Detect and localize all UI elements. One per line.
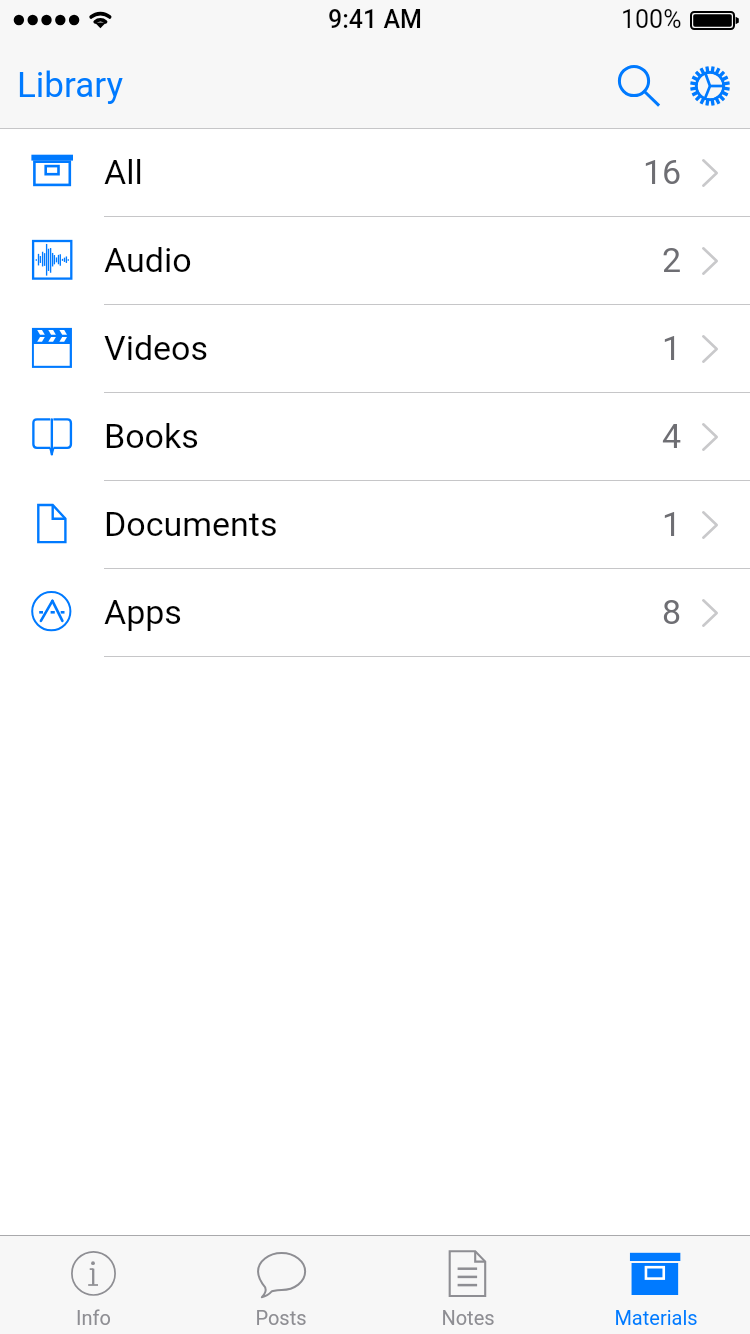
button[interactable]: Posts (187, 1235, 374, 1334)
button[interactable]: Info (0, 1235, 187, 1334)
button[interactable]: Materials (562, 1235, 750, 1334)
button[interactable]: Settings (682, 58, 738, 114)
staticText: Notes (441, 1306, 495, 1329)
button[interactable]: All (0, 129, 750, 217)
button[interactable]: Apps (0, 569, 750, 657)
button[interactable]: Documents (0, 481, 750, 569)
staticText: 2 (662, 240, 682, 280)
staticText: Info (76, 1306, 111, 1329)
staticText: Materials (614, 1306, 698, 1329)
staticText: Posts (255, 1306, 307, 1329)
button[interactable]: Audio (0, 217, 750, 305)
button[interactable]: Notes (374, 1235, 562, 1334)
staticText: 16 (643, 152, 682, 192)
staticText: 4 (662, 416, 682, 456)
staticText: 8 (662, 592, 682, 632)
staticText: Documents (104, 504, 278, 544)
staticText: 1 (662, 328, 682, 368)
staticText: Audio (104, 240, 192, 280)
button[interactable]: Search (606, 53, 662, 109)
staticText: 9:41 AM (328, 5, 423, 34)
button[interactable]: Videos (0, 305, 750, 393)
staticText: Videos (104, 328, 209, 368)
staticText: Books (104, 416, 199, 456)
staticText: Apps (104, 592, 182, 632)
staticText: 100% (621, 5, 682, 34)
staticText: Library (17, 65, 123, 106)
staticText: 1 (662, 504, 682, 544)
button[interactable]: Books (0, 393, 750, 481)
staticText: All (104, 152, 143, 192)
